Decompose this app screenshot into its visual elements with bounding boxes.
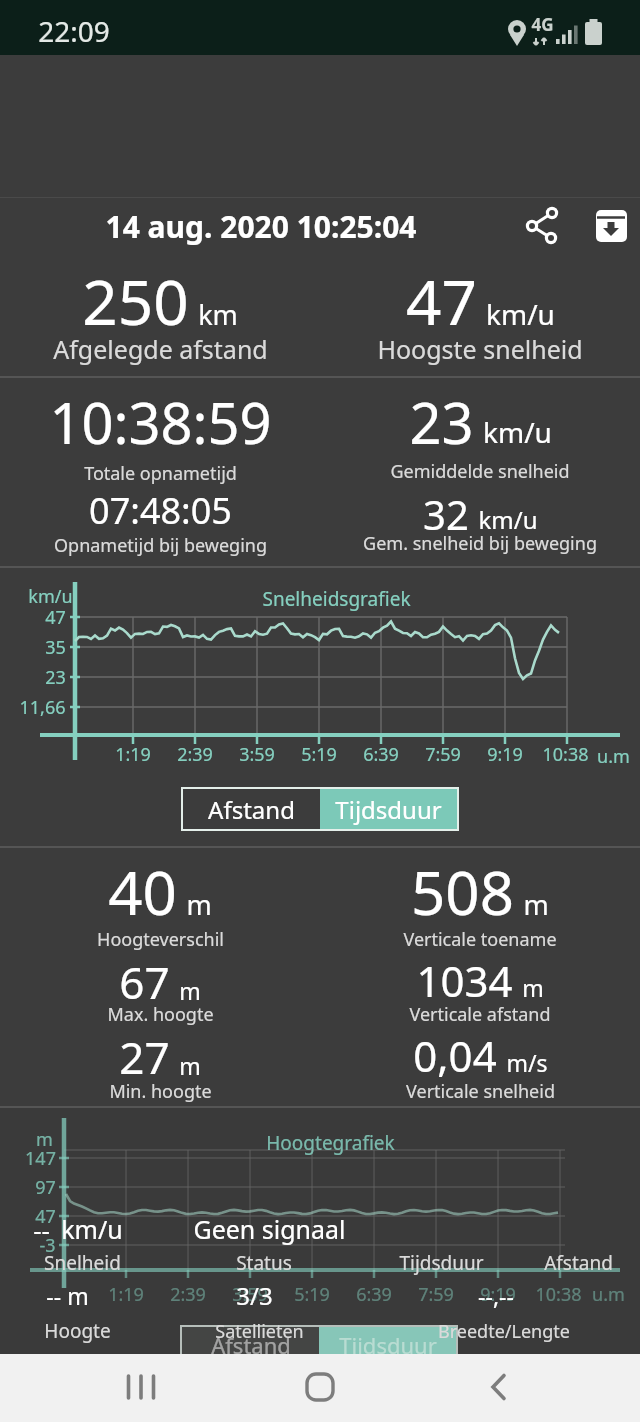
staticText: Hoogtegrafiek — [266, 1130, 395, 1156]
staticText: Hoogte — [44, 1318, 111, 1344]
staticText: 0,04 — [413, 1027, 497, 1084]
staticText: Verticale afstand — [409, 1002, 551, 1027]
staticText: Opnametijd bij beweging — [54, 533, 267, 558]
staticText: m — [36, 1127, 53, 1152]
staticText: km/u — [483, 413, 552, 451]
staticText: m — [522, 972, 544, 1003]
staticText: km/u — [486, 295, 555, 333]
staticText: Afstand — [544, 1250, 613, 1276]
staticText: 32 — [423, 487, 469, 541]
staticText: 1034 — [416, 952, 513, 1009]
staticText: 9:19 — [480, 1282, 516, 1307]
staticText: m — [186, 886, 212, 923]
staticText: 1:19 — [108, 1282, 144, 1307]
staticText: 11,66 — [19, 695, 66, 720]
staticText: 5:19 — [301, 742, 337, 767]
staticText: Snelheid — [44, 1250, 121, 1276]
staticText: -- m — [46, 1280, 89, 1311]
staticText: 6:39 — [356, 1282, 392, 1307]
staticText: m/s — [506, 1047, 548, 1078]
staticText: 35 — [45, 635, 66, 660]
staticText: 9:19 — [487, 742, 523, 767]
staticText: Snelheidsgrafiek — [262, 586, 411, 612]
staticText: Max. hoogte — [107, 1002, 214, 1027]
staticText: 27 — [119, 1027, 170, 1087]
staticText: 3:59 — [239, 742, 275, 767]
staticText: 07:48:05 — [89, 486, 232, 535]
staticText: Verticale toename — [403, 927, 557, 952]
staticText: 97 — [35, 1175, 56, 1200]
staticText: m — [179, 1050, 201, 1081]
staticText: Afgelegde afstand — [53, 332, 268, 366]
staticText: Gem. snelheid bij beweging — [363, 531, 597, 556]
staticText: 40 — [108, 851, 177, 933]
button[interactable] — [590, 204, 634, 248]
staticText: Hoogste snelheid — [377, 332, 583, 366]
staticText: 47 — [406, 259, 477, 343]
staticText: 2:39 — [177, 742, 213, 767]
staticText: 2:39 — [170, 1282, 206, 1307]
staticText: 10:38:59 — [49, 384, 272, 460]
staticText: Status — [236, 1250, 292, 1276]
button[interactable] — [109, 1355, 173, 1419]
staticText: Hoogteverschil — [97, 927, 224, 952]
staticText: -3 — [39, 1233, 56, 1258]
staticText: 3:59 — [232, 1282, 268, 1307]
staticText: Verticale snelheid — [406, 1079, 555, 1104]
staticText: km/u — [61, 1212, 123, 1246]
staticText: 47 — [35, 1204, 56, 1229]
staticText: 14 aug. 2020 10:25:04 — [105, 206, 417, 247]
staticText: 5:19 — [294, 1282, 330, 1307]
staticText: 23 — [45, 665, 66, 690]
staticText: 22:09 — [38, 12, 110, 50]
staticText: m — [523, 886, 549, 923]
staticText: Satellieten — [215, 1319, 304, 1344]
staticText: 1:19 — [115, 742, 151, 767]
staticText: Breedte/Lengte — [438, 1319, 570, 1344]
staticText: Geen signaal — [193, 1212, 346, 1246]
staticText: 67 — [119, 952, 170, 1012]
button[interactable]: Tijdsduur — [320, 789, 457, 829]
staticText: 23 — [409, 384, 474, 460]
staticText: Tijdsduur — [335, 793, 442, 826]
staticText: Tijdsduur — [399, 1250, 484, 1276]
staticText: 147 — [25, 1146, 56, 1171]
staticText: 508 — [411, 851, 514, 933]
staticText: 10:38 — [542, 742, 589, 767]
staticText: --,-- — [478, 1280, 514, 1311]
button[interactable] — [522, 204, 566, 248]
staticText: km/u — [478, 503, 538, 536]
staticText: Afstand — [208, 793, 295, 826]
staticText: Gemiddelde snelheid — [390, 459, 570, 484]
staticText: Totale opnametijd — [84, 461, 237, 486]
staticText: 7:59 — [425, 742, 461, 767]
staticText: Afstand — [211, 1330, 291, 1360]
staticText: km/u — [28, 584, 73, 609]
staticText: 250 — [82, 259, 189, 343]
staticText: 10:38 — [535, 1282, 582, 1307]
staticText: Min. hoogte — [109, 1079, 212, 1104]
staticText: 4G — [531, 13, 554, 36]
staticText: 47 — [45, 605, 66, 630]
staticText: u.m — [592, 1282, 625, 1307]
staticText: -- — [33, 1212, 50, 1247]
button[interactable]: Afstand — [183, 789, 320, 829]
staticText: 6:39 — [363, 742, 399, 767]
staticText: Tijdsduur — [339, 1330, 437, 1360]
staticText: 7:59 — [418, 1282, 454, 1307]
staticText: 3/3 — [236, 1279, 273, 1312]
staticText: u.m — [597, 744, 630, 769]
staticText: km — [198, 296, 238, 333]
button[interactable] — [467, 1355, 531, 1419]
button[interactable] — [288, 1355, 352, 1419]
staticText: m — [179, 975, 201, 1006]
